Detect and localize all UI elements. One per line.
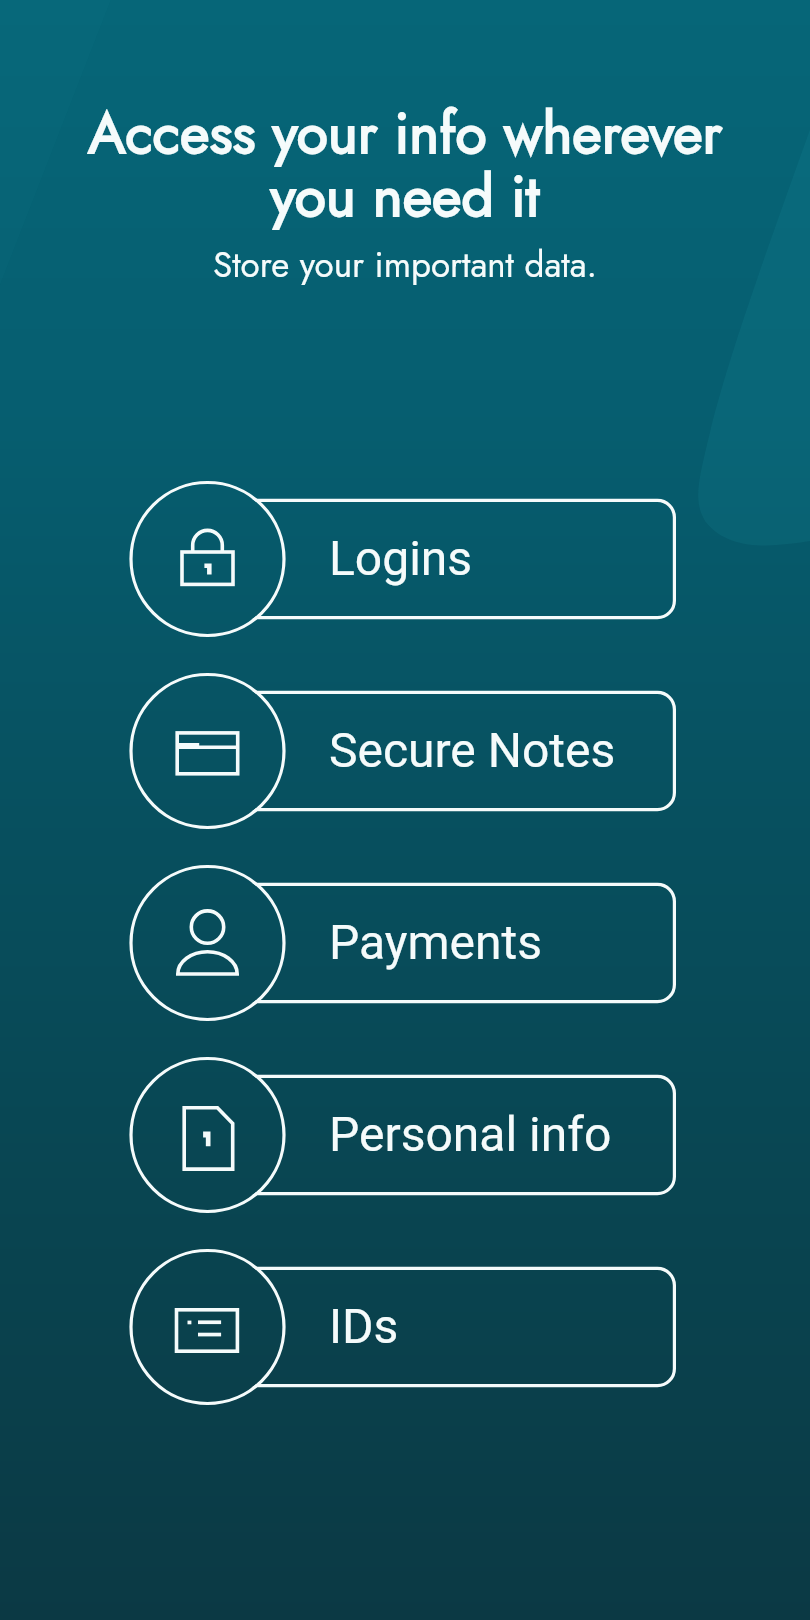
staticText: IDs xyxy=(329,1298,399,1354)
staticText: Store your important data. xyxy=(0,240,810,291)
staticText: Secure Notes xyxy=(329,722,616,778)
button[interactable]: Payments xyxy=(131,858,674,1028)
button[interactable]: Secure Notes xyxy=(131,666,674,836)
staticText: Personal info xyxy=(329,1106,612,1162)
staticText: Logins xyxy=(329,530,473,586)
staticText: Payments xyxy=(329,914,543,970)
staticText: Access your info wherever you need it xyxy=(40,92,770,237)
button[interactable]: Personal info xyxy=(131,1050,674,1220)
button[interactable]: IDs xyxy=(131,1242,674,1412)
button[interactable]: Logins xyxy=(131,474,674,644)
